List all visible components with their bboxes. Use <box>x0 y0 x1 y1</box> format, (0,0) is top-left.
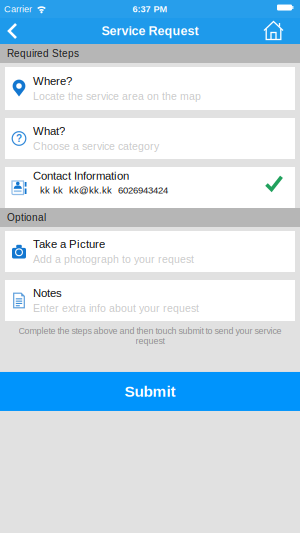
staticText: ? <box>16 133 22 144</box>
staticText: What? <box>33 125 65 137</box>
staticText: Carrier <box>4 4 32 14</box>
button[interactable]: ? <box>0 118 300 159</box>
staticText: Required Steps <box>7 48 79 59</box>
button[interactable]: Where? <box>0 67 300 110</box>
staticText: Choose a service category <box>33 140 159 152</box>
button[interactable]: Notes <box>0 280 300 321</box>
staticText: Service Request <box>101 24 198 38</box>
staticText: Enter extra info about your request <box>33 302 199 314</box>
button[interactable]: Submit <box>0 372 300 411</box>
staticText: Where? <box>33 75 72 87</box>
staticText: Submit <box>124 383 175 400</box>
staticText: Complete the steps above and then touch … <box>18 326 281 336</box>
button[interactable]: Home <box>260 18 300 44</box>
button[interactable]: Contact Information <box>0 167 300 208</box>
button[interactable]: Back <box>0 18 26 44</box>
staticText: Locate the service area on the map <box>33 90 201 102</box>
staticText: Contact Information <box>33 169 129 182</box>
staticText: Take a Picture <box>33 238 105 250</box>
staticText: Notes <box>33 287 62 299</box>
staticText: kk kk kk@kk.kk 6026943424 <box>40 185 168 196</box>
staticText: 6:37 PM <box>132 4 167 14</box>
button[interactable]: Take a Picture <box>0 231 300 272</box>
staticText: Optional <box>7 212 46 223</box>
staticText: Add a photograph to your request <box>33 253 194 265</box>
staticText: request <box>135 336 164 346</box>
